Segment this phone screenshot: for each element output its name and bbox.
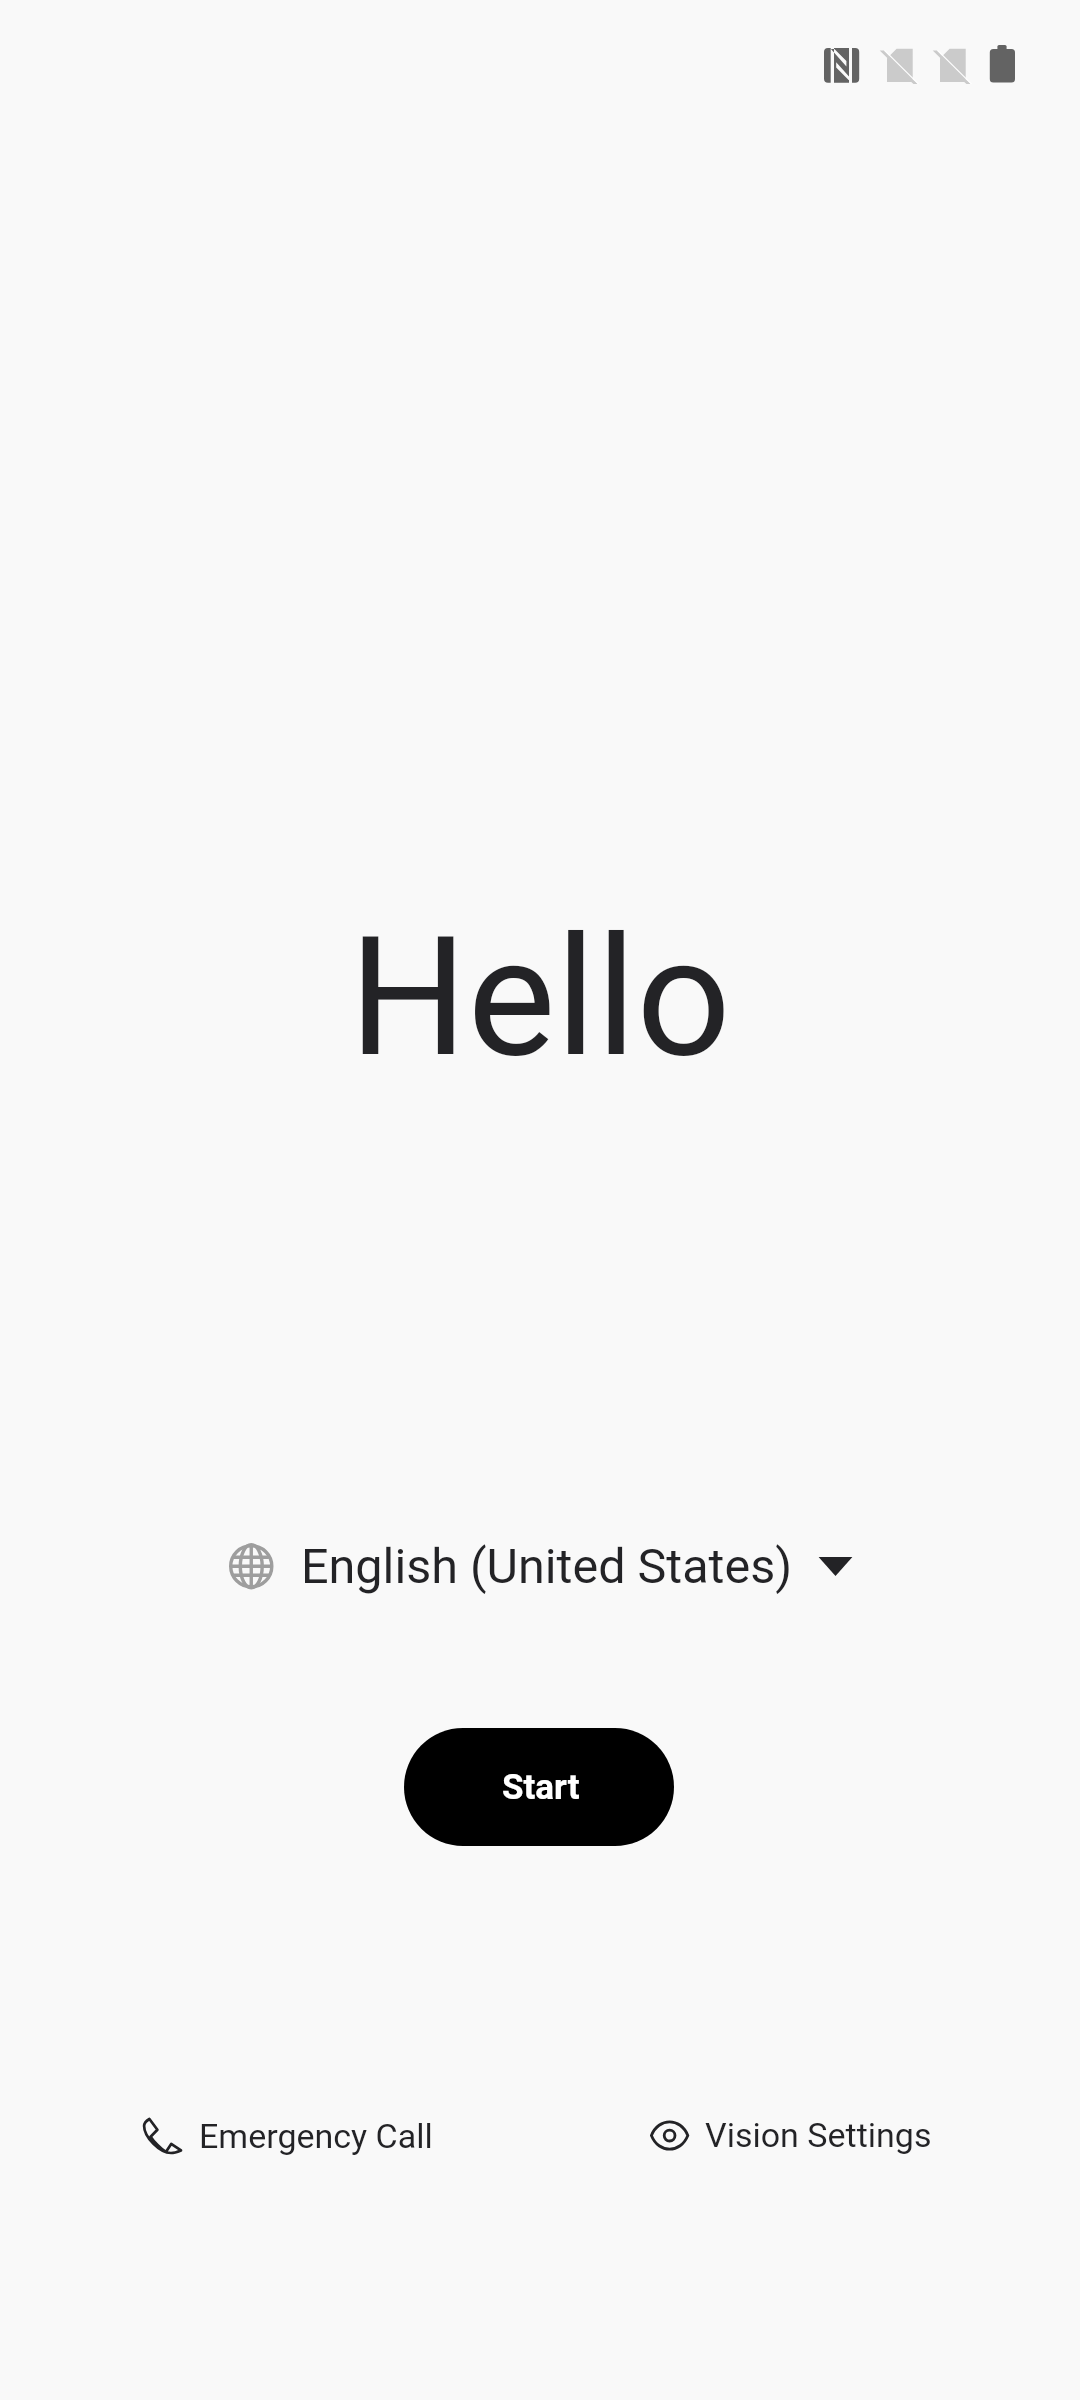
- button[interactable]: Vision Settings: [644, 2105, 938, 2165]
- staticText: Vision Settings: [705, 2115, 932, 2155]
- staticText: English (United States): [301, 1538, 793, 1595]
- other: No signal: [940, 44, 978, 90]
- other: NFC enabled: [824, 48, 861, 86]
- button[interactable]: Start: [404, 1728, 674, 1846]
- button[interactable]: Emergency Call: [135, 2105, 439, 2167]
- staticText: Hello: [349, 900, 731, 1095]
- other: No signal: [887, 44, 925, 90]
- button[interactable]: English (United States): [219, 1526, 863, 1607]
- other: Battery full: [989, 44, 1017, 86]
- staticText: Emergency Call: [199, 2116, 433, 2156]
- staticText: Start: [502, 1767, 580, 1808]
